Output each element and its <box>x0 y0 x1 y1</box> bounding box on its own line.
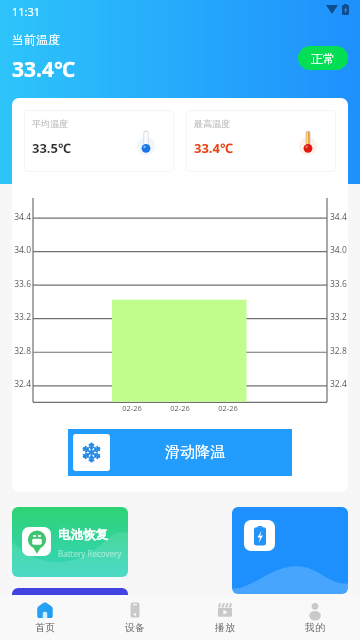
staticText: 34.4 <box>330 211 348 223</box>
staticText: 33.6 <box>12 278 31 290</box>
button[interactable]: 电池恢复 <box>12 507 128 577</box>
staticText: 滑动降温 <box>165 443 225 462</box>
staticText: 02-26 <box>208 403 248 413</box>
staticText: 正常 <box>311 51 335 66</box>
staticText: 32.8 <box>12 345 31 357</box>
staticText: 02-26 <box>112 403 152 413</box>
staticText: 当前温度 <box>12 32 60 47</box>
button[interactable]: 最高温度 <box>186 110 336 172</box>
staticText: 32.4 <box>12 378 31 390</box>
staticText: 33.4℃ <box>12 55 76 84</box>
staticText: 我的 <box>305 621 325 634</box>
staticText: 34.0 <box>12 244 31 256</box>
staticText: 设备 <box>125 621 145 634</box>
staticText: Battery Recovery <box>58 548 122 559</box>
button[interactable]: 滑动降温 <box>68 429 292 476</box>
staticText: 电池恢复 <box>58 527 108 543</box>
staticText: 34.4 <box>12 211 31 223</box>
staticText: 平均温度 <box>32 118 68 129</box>
staticText: 播放 <box>215 621 235 634</box>
button[interactable]: 设备 <box>90 595 180 640</box>
button[interactable] <box>12 588 128 597</box>
button[interactable] <box>232 507 348 594</box>
button[interactable]: 首页 <box>0 595 90 640</box>
button[interactable]: 播放 <box>180 595 270 640</box>
staticText: 32.8 <box>330 345 348 357</box>
staticText: 33.4℃ <box>194 139 234 157</box>
staticText: 首页 <box>35 621 55 634</box>
button[interactable]: 我的 <box>270 595 360 640</box>
staticText: 最高温度 <box>194 118 230 129</box>
staticText: 33.2 <box>12 311 31 323</box>
staticText: 32.4 <box>330 378 348 390</box>
staticText: 33.2 <box>330 311 348 323</box>
staticText: 34.0 <box>330 244 348 256</box>
staticText: 33.5℃ <box>32 139 72 157</box>
staticText: 33.6 <box>330 278 348 290</box>
button[interactable]: 平均温度 <box>24 110 174 172</box>
staticText: 11:31 <box>12 4 41 19</box>
button[interactable]: 正常 <box>298 46 348 70</box>
staticText: 02-26 <box>160 403 200 413</box>
